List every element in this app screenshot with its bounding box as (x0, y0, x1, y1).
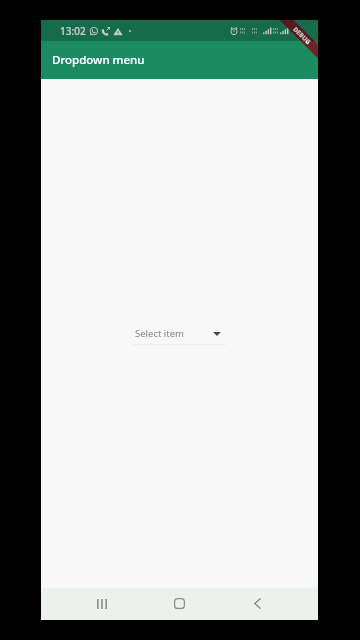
button[interactable]: Recent apps (82, 588, 122, 619)
staticText: 13:02 (60, 24, 86, 38)
button[interactable]: Home (159, 588, 200, 619)
button[interactable]: Back (237, 588, 277, 619)
staticText: DEBUG (291, 25, 313, 47)
staticText: Dropdown menu (52, 52, 145, 68)
button[interactable]: Select item (133, 327, 226, 345)
staticText: Select item (135, 327, 184, 340)
